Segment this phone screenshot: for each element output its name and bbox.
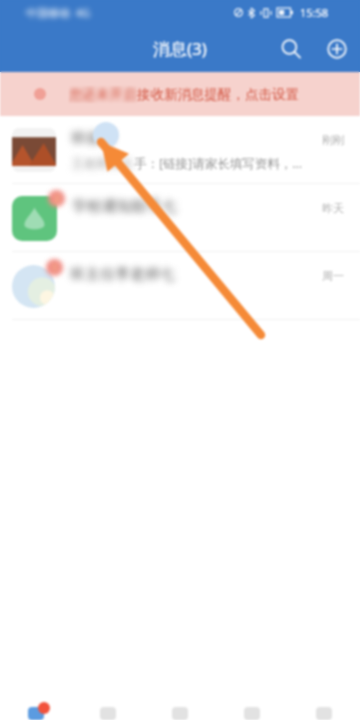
staticText: 15:58: [300, 5, 329, 20]
button[interactable]: Messages: [0, 702, 72, 720]
staticText: 昨天: [322, 201, 344, 215]
button[interactable]: 1: [0, 252, 360, 320]
button[interactable]: Contacts: [72, 702, 144, 720]
staticText: 手：[链接]请家长填写资料，…: [134, 155, 303, 172]
staticText: 班主任李老师七: [70, 265, 175, 284]
button[interactable]: 您还未开启: [0, 72, 360, 116]
button[interactable]: 2: [0, 184, 360, 252]
staticText: 王老师班主: [71, 156, 134, 172]
staticText: 班级群: [71, 129, 116, 148]
button[interactable]: Discover: [216, 702, 288, 720]
staticText: 消息(3): [153, 37, 207, 60]
staticText: 周一: [322, 269, 344, 283]
button[interactable]: Add: [314, 26, 360, 72]
button[interactable]: Workbench: [144, 702, 216, 720]
staticText: 2: [54, 192, 60, 206]
button[interactable]: Search: [268, 26, 314, 72]
staticText: 您还未开启: [69, 86, 137, 103]
button[interactable]: Me: [288, 702, 360, 720]
staticText: 刚刚: [322, 133, 344, 147]
staticText: 接收新消息提醒，点击设置: [137, 86, 299, 103]
staticText: 中国移动 4G: [26, 5, 91, 20]
staticText: 1: [52, 261, 58, 275]
button[interactable]: 班级群: [0, 116, 360, 184]
staticText: 学校通知助手七: [72, 197, 177, 216]
